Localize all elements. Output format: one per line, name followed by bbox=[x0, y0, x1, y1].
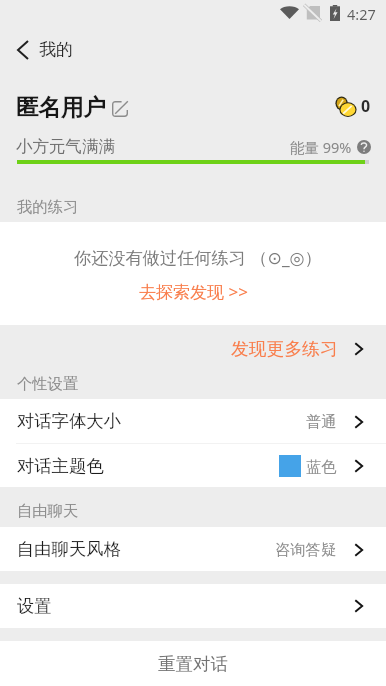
staticText: 自由聊天 bbox=[17, 501, 79, 520]
button[interactable]: 发现更多练习 bbox=[231, 333, 371, 365]
staticText: 小方元气满满 bbox=[16, 136, 115, 157]
staticText: 普通 bbox=[306, 412, 337, 431]
staticText: 匿名用户 bbox=[16, 93, 106, 121]
button[interactable]: 去探索发现 >> bbox=[139, 280, 248, 303]
button[interactable]: Back bbox=[0, 26, 42, 72]
staticText: 我的 bbox=[39, 39, 73, 60]
staticText: 咨询答疑 bbox=[275, 540, 337, 559]
staticText: 自由聊天风格 bbox=[17, 538, 121, 560]
staticText: 4:27 bbox=[347, 4, 376, 24]
staticText: 发现更多练习 bbox=[231, 338, 338, 360]
staticText: 重置对话 bbox=[158, 653, 228, 675]
staticText: 去探索发现 >> bbox=[139, 280, 248, 303]
button[interactable]: 0 bbox=[335, 95, 371, 117]
staticText: 对话字体大小 bbox=[17, 410, 121, 432]
button[interactable]: 对话字体大小 bbox=[0, 399, 386, 443]
button[interactable]: 自由聊天风格 bbox=[0, 527, 386, 571]
staticText: 你还没有做过任何练习 （⊙_◎） bbox=[74, 246, 322, 269]
button[interactable]: Edit nickname bbox=[110, 99, 130, 119]
button[interactable]: 重置对话 bbox=[0, 641, 386, 686]
staticText: 蓝色 bbox=[306, 457, 337, 476]
button[interactable]: Energy help bbox=[357, 140, 371, 154]
button[interactable]: 对话主题色 bbox=[0, 444, 386, 487]
staticText: 设置 bbox=[17, 595, 52, 617]
staticText: 我的练习 bbox=[17, 197, 79, 216]
staticText: 个性设置 bbox=[17, 374, 79, 393]
staticText: 能量 99% bbox=[290, 137, 352, 157]
staticText: 0 bbox=[361, 95, 371, 117]
button[interactable]: 设置 bbox=[0, 584, 386, 628]
staticText: 对话主题色 bbox=[17, 455, 104, 477]
